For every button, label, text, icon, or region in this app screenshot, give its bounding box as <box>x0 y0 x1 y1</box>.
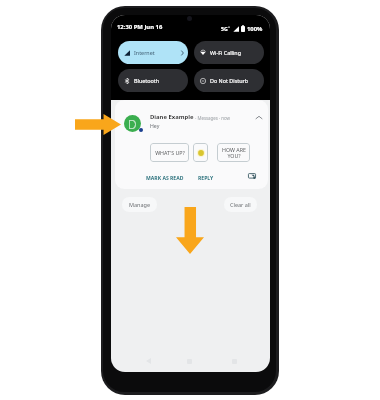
button[interactable]: Collapse notification <box>253 112 264 123</box>
button[interactable]: Emoji reply <box>193 143 208 162</box>
button[interactable]: Manage <box>122 197 157 212</box>
staticText: HOW ARE YOU? <box>222 146 246 159</box>
button[interactable]: D <box>115 100 268 189</box>
staticText: Manage <box>129 201 151 208</box>
button[interactable]: Recent apps <box>228 355 240 367</box>
staticText: Internet <box>134 49 155 56</box>
staticText: + <box>228 24 231 29</box>
button[interactable]: Do Not Disturb <box>194 69 264 92</box>
button[interactable]: Home <box>183 355 195 367</box>
button[interactable]: REPLY <box>198 175 214 182</box>
button[interactable]: Open in bubble <box>246 170 257 181</box>
staticText: · Messages · now <box>194 115 231 121</box>
button[interactable]: Clear all <box>224 197 257 212</box>
button[interactable]: Internet <box>118 41 188 64</box>
staticText: 5G <box>221 25 228 32</box>
staticText: Hey <box>150 122 160 129</box>
staticText: WHAT'S UP? <box>155 149 185 156</box>
staticText: 12:30 PM Jun 16 <box>117 23 163 31</box>
staticText: D <box>128 116 137 132</box>
button[interactable]: Back <box>142 355 154 367</box>
staticText: Do Not Disturb <box>210 77 249 84</box>
staticText: Clear all <box>230 201 251 208</box>
staticText: Wi-Fi Calling <box>210 49 241 56</box>
button[interactable]: HOW ARE YOU? <box>217 143 250 162</box>
button[interactable]: MARK AS READ <box>146 175 184 182</box>
staticText: Diane Example <box>150 113 194 121</box>
staticText: Bluetooth <box>134 77 160 84</box>
button[interactable]: WHAT'S UP? <box>150 143 189 162</box>
staticText: 100% <box>247 25 263 33</box>
button[interactable]: Wi-Fi Calling <box>194 41 264 64</box>
button[interactable]: Bluetooth <box>118 69 188 92</box>
